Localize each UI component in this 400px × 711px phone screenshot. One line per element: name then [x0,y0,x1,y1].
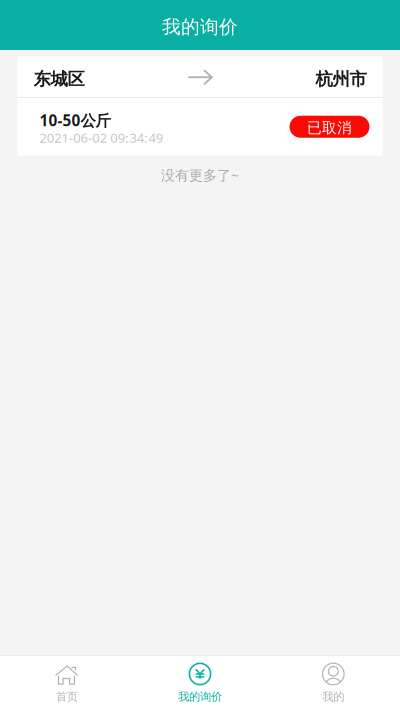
staticText: 我的 [322,689,344,704]
staticText: 杭州市 [315,68,366,90]
staticText: 首页 [56,689,78,704]
button[interactable]: 我的 [267,663,400,704]
button[interactable]: 首页 [0,663,133,704]
staticText: 我的询价 [178,689,222,704]
staticText: 没有更多了~ [161,165,239,185]
button[interactable]: 我的询价 [133,663,267,704]
staticText: 已取消 [307,118,352,137]
staticText: 我的询价 [162,15,238,39]
button[interactable]: 东城区 [17,56,382,155]
staticText: 10-50公斤 [39,110,110,131]
staticText: 2021-06-02 09:34:49 [39,129,163,147]
staticText: 东城区 [33,68,84,90]
